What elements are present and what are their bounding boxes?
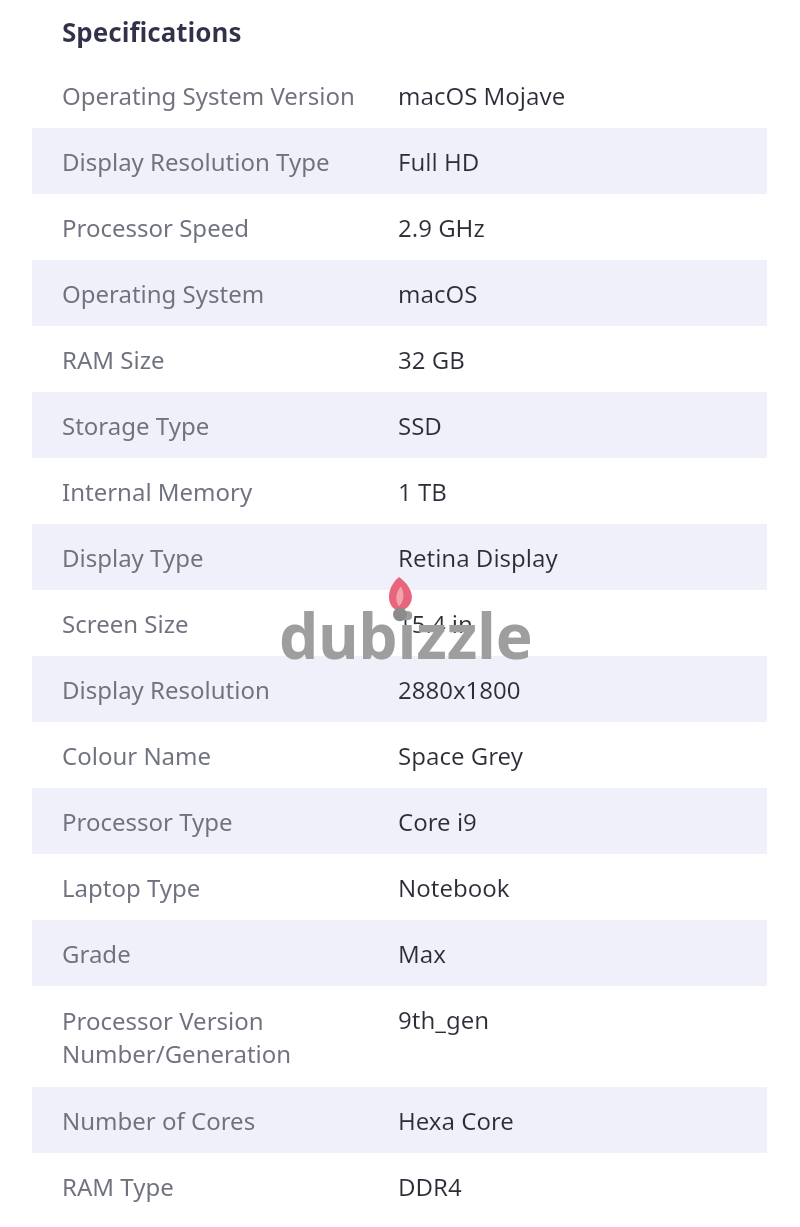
staticText: Display Resolution bbox=[62, 673, 270, 706]
button[interactable]: Display Type bbox=[0, 524, 800, 590]
staticText: 2.9 GHz bbox=[398, 211, 485, 244]
staticText: Storage Type bbox=[62, 409, 210, 442]
button[interactable]: Grade bbox=[0, 920, 800, 986]
staticText: Display Type bbox=[62, 541, 204, 574]
staticText: Operating System bbox=[62, 277, 265, 310]
staticText: Laptop Type bbox=[62, 871, 201, 904]
staticText: 32 GB bbox=[398, 343, 465, 376]
staticText: 1 TB bbox=[398, 475, 447, 508]
button[interactable]: Colour Name bbox=[0, 722, 800, 788]
staticText: Processor Version Number/Generation bbox=[62, 1004, 292, 1070]
button[interactable]: Processor Speed bbox=[0, 194, 800, 260]
button[interactable]: Storage Type bbox=[0, 392, 800, 458]
button[interactable]: Processor Type bbox=[0, 788, 800, 854]
button[interactable]: Number of Cores bbox=[0, 1087, 800, 1153]
button[interactable]: Laptop Type bbox=[0, 854, 800, 920]
staticText: Processor Type bbox=[62, 805, 233, 838]
button[interactable]: Operating System Version bbox=[0, 62, 800, 128]
staticText: 15.4 in bbox=[398, 607, 473, 640]
staticText: RAM Size bbox=[62, 343, 165, 376]
staticText: Grade bbox=[62, 937, 131, 970]
staticText: Retina Display bbox=[398, 541, 558, 574]
staticText: RAM Type bbox=[62, 1170, 174, 1203]
staticText: Notebook bbox=[398, 871, 510, 904]
staticText: Screen Size bbox=[62, 607, 189, 640]
button[interactable]: Screen Size bbox=[0, 590, 800, 656]
button[interactable]: Processor Version Number/Generation bbox=[0, 986, 800, 1087]
staticText: Internal Memory bbox=[62, 475, 253, 508]
staticText: 9th_gen bbox=[398, 1003, 490, 1036]
staticText: Hexa Core bbox=[398, 1104, 514, 1137]
staticText: 2880x1800 bbox=[398, 673, 521, 706]
button[interactable]: Internal Memory bbox=[0, 458, 800, 524]
button[interactable]: RAM Size bbox=[0, 326, 800, 392]
staticText: Number of Cores bbox=[62, 1104, 256, 1137]
button[interactable]: RAM Type bbox=[0, 1153, 800, 1219]
staticText: macOS Mojave bbox=[398, 79, 566, 112]
staticText: Processor Speed bbox=[62, 211, 249, 244]
button[interactable]: Operating System bbox=[0, 260, 800, 326]
staticText: macOS bbox=[398, 277, 478, 310]
staticText: dubizzle bbox=[279, 593, 533, 677]
staticText: Space Grey bbox=[398, 739, 523, 772]
button[interactable]: Display Resolution Type bbox=[0, 128, 800, 194]
staticText: Full HD bbox=[398, 145, 480, 178]
staticText: Specifications bbox=[62, 14, 242, 49]
staticText: Display Resolution Type bbox=[62, 145, 330, 178]
staticText: Operating System Version bbox=[62, 79, 355, 112]
staticText: SSD bbox=[398, 409, 442, 442]
button[interactable]: Display Resolution bbox=[0, 656, 800, 722]
staticText: Colour Name bbox=[62, 739, 212, 772]
staticText: Max bbox=[398, 937, 446, 970]
staticText: DDR4 bbox=[398, 1170, 462, 1203]
staticText: Core i9 bbox=[398, 805, 477, 838]
